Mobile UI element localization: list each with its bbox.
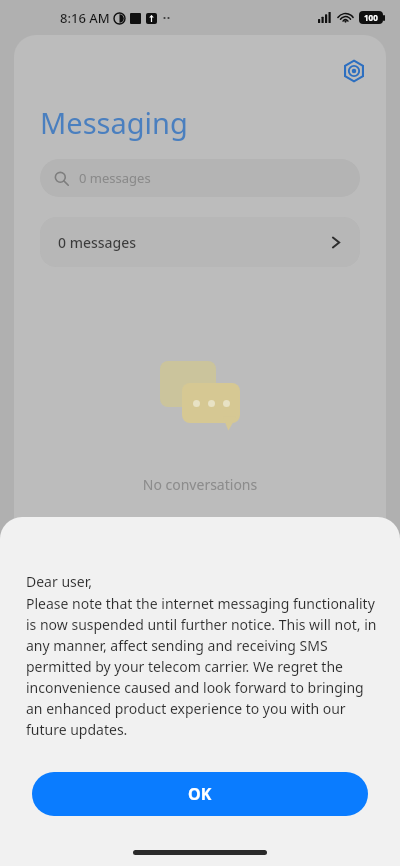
button[interactable]: OK bbox=[32, 772, 368, 816]
staticText: 8:16 AM bbox=[60, 9, 110, 27]
button[interactable]: 0 messages bbox=[40, 159, 360, 197]
button[interactable]: Settings bbox=[334, 51, 374, 91]
staticText: 100 bbox=[364, 12, 378, 23]
staticText: Messaging bbox=[40, 103, 188, 142]
staticText: No conversations bbox=[14, 475, 386, 494]
staticText: OK bbox=[188, 783, 212, 805]
staticText: 0 messages bbox=[58, 233, 137, 252]
staticText: Dear user, Please note that the internet… bbox=[26, 572, 378, 739]
staticText: 0 messages bbox=[79, 169, 151, 187]
button[interactable]: 0 messages bbox=[40, 217, 360, 267]
